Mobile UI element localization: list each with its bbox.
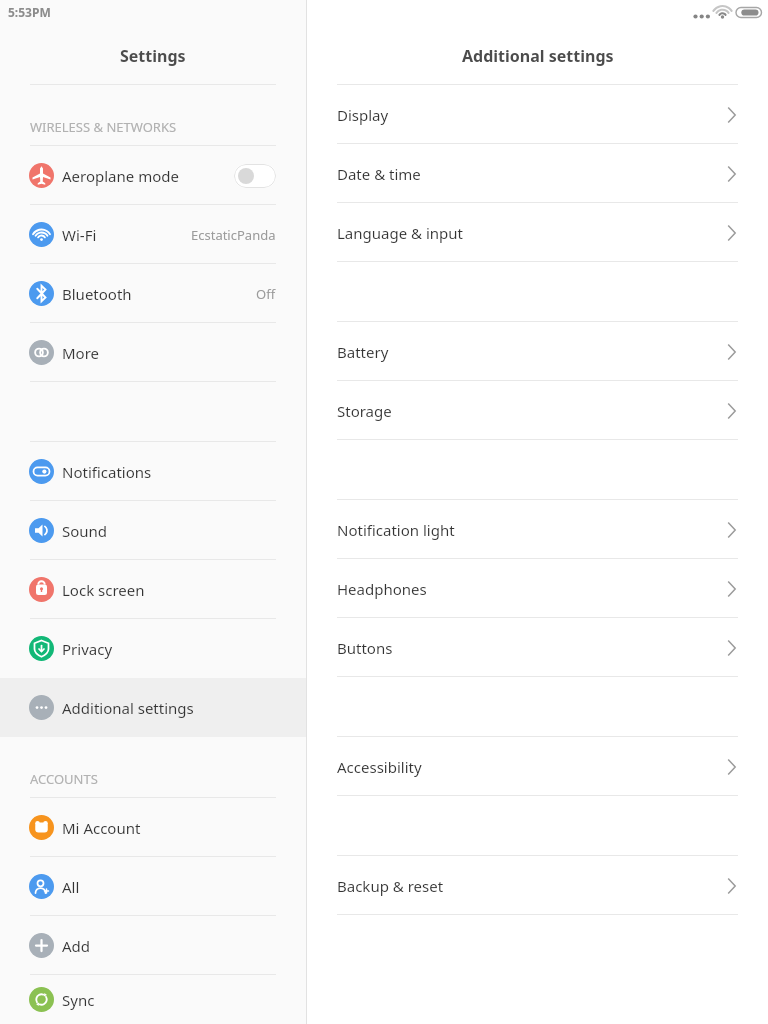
staticText: Display — [337, 105, 389, 125]
button[interactable]: Notification light — [307, 500, 768, 559]
button[interactable]: Add — [0, 916, 306, 975]
staticText: Lock screen — [62, 580, 145, 600]
button[interactable]: Notifications — [0, 442, 306, 501]
staticText: Accessibility — [337, 757, 422, 777]
button[interactable]: Privacy — [0, 619, 306, 678]
button[interactable]: Display — [307, 85, 768, 144]
staticText: Language & input — [337, 223, 463, 243]
staticText: Wi-Fi — [62, 225, 97, 245]
staticText: 5:53PM — [8, 4, 51, 20]
button[interactable]: Storage — [307, 381, 768, 440]
staticText: Additional settings — [62, 698, 194, 718]
button[interactable]: All — [0, 857, 306, 916]
staticText: Sync — [62, 990, 95, 1010]
button[interactable] — [234, 164, 276, 188]
staticText: EcstaticPanda — [191, 226, 276, 244]
staticText: Add — [62, 936, 91, 956]
button[interactable]: Accessibility — [307, 737, 768, 796]
staticText: ACCOUNTS — [30, 770, 98, 788]
staticText: Sound — [62, 521, 108, 541]
staticText: Battery — [337, 342, 389, 362]
staticText: Buttons — [337, 638, 393, 658]
button[interactable]: Sync — [0, 975, 306, 1024]
button[interactable]: Headphones — [307, 559, 768, 618]
staticText: All — [62, 877, 80, 897]
staticText: Off — [256, 285, 276, 303]
button[interactable]: Backup & reset — [307, 856, 768, 915]
button[interactable]: Wi-Fi — [0, 205, 306, 264]
staticText: Headphones — [337, 579, 427, 599]
button[interactable]: Aeroplane mode — [0, 146, 306, 205]
staticText: Notification light — [337, 520, 455, 540]
button[interactable]: Battery — [307, 322, 768, 381]
staticText: More — [62, 343, 100, 363]
button[interactable]: More — [0, 323, 306, 382]
button[interactable]: Sound — [0, 501, 306, 560]
staticText: Mi Account — [62, 818, 141, 838]
button[interactable]: Buttons — [307, 618, 768, 677]
staticText: Settings — [120, 45, 186, 67]
button[interactable]: Mi Account — [0, 798, 306, 857]
staticText: Aeroplane mode — [62, 166, 179, 186]
button[interactable]: Language & input — [307, 203, 768, 262]
staticText: Backup & reset — [337, 876, 444, 896]
button[interactable]: Date & time — [307, 144, 768, 203]
staticText: Privacy — [62, 639, 113, 659]
staticText: Additional settings — [462, 45, 614, 67]
button[interactable]: Additional settings — [0, 678, 306, 737]
staticText: Notifications — [62, 462, 152, 482]
staticText: WIRELESS & NETWORKS — [30, 118, 177, 136]
button[interactable]: Bluetooth — [0, 264, 306, 323]
button[interactable]: Lock screen — [0, 560, 306, 619]
staticText: Bluetooth — [62, 284, 132, 304]
staticText: Date & time — [337, 164, 421, 184]
staticText: Storage — [337, 401, 392, 421]
